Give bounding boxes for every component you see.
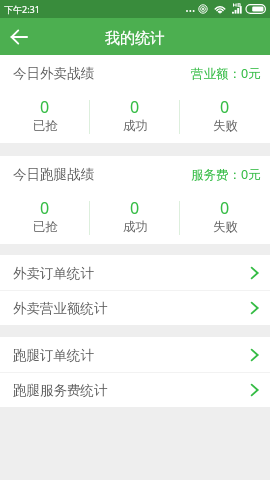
staticText: 今日外卖战绩 bbox=[13, 65, 94, 82]
staticText: 0 bbox=[40, 96, 50, 118]
button[interactable]: 0 bbox=[90, 197, 180, 235]
staticText: 0 bbox=[40, 197, 50, 219]
staticText: 外卖营业额统计 bbox=[13, 300, 108, 317]
button[interactable]: 0 bbox=[0, 197, 90, 235]
staticText: 0 bbox=[130, 96, 140, 118]
staticText: 失败 bbox=[213, 219, 238, 235]
button[interactable]: 外卖营业额统计 bbox=[0, 291, 270, 325]
button[interactable]: 0 bbox=[0, 96, 90, 134]
staticText: 服务费：0元 bbox=[191, 166, 261, 183]
staticText: 已抢 bbox=[33, 118, 58, 134]
staticText: 我的统计 bbox=[105, 29, 165, 48]
staticText: 0 bbox=[130, 197, 140, 219]
staticText: 失败 bbox=[213, 118, 238, 134]
staticText: 0 bbox=[220, 197, 230, 219]
staticText: 0 bbox=[220, 96, 230, 118]
staticText: 成功 bbox=[123, 219, 148, 235]
button[interactable]: Back bbox=[3, 21, 35, 53]
button[interactable]: 0 bbox=[90, 96, 180, 134]
button[interactable]: 跑腿服务费统计 bbox=[0, 373, 270, 407]
button[interactable]: 0 bbox=[180, 96, 270, 134]
staticText: 外卖订单统计 bbox=[13, 265, 94, 282]
button[interactable]: 0 bbox=[180, 197, 270, 235]
button[interactable]: 跑腿订单统计 bbox=[0, 337, 270, 372]
staticText: 今日跑腿战绩 bbox=[13, 166, 94, 183]
staticText: 下午2:31 bbox=[4, 3, 40, 15]
staticText: 已抢 bbox=[33, 219, 58, 235]
staticText: 营业额：0元 bbox=[191, 65, 261, 82]
staticText: 跑腿服务费统计 bbox=[13, 382, 108, 399]
staticText: 成功 bbox=[123, 118, 148, 134]
staticText: 跑腿订单统计 bbox=[13, 347, 94, 364]
button[interactable]: 外卖订单统计 bbox=[0, 255, 270, 290]
